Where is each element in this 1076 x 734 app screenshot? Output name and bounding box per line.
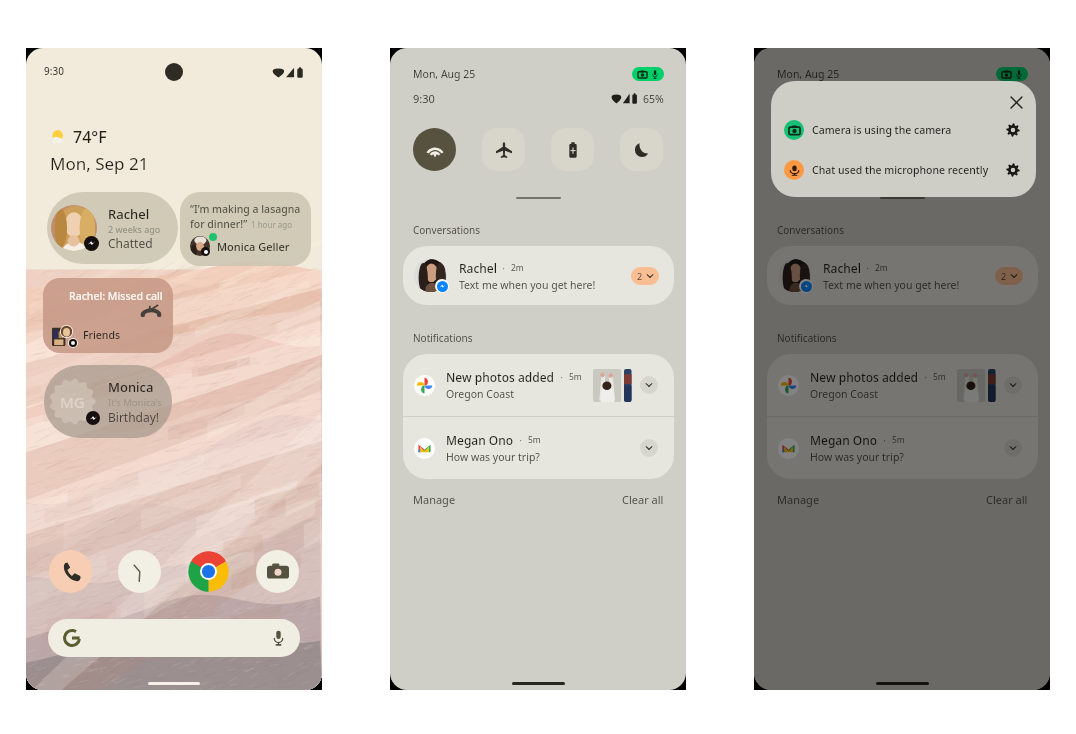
staticText: New photos added bbox=[810, 369, 919, 385]
staticText: Mon, Sep 21 bbox=[50, 152, 149, 175]
staticText: 2m bbox=[511, 262, 524, 274]
button[interactable]: Airplane mode bbox=[482, 128, 525, 171]
staticText: Monica bbox=[108, 378, 154, 396]
button[interactable]: Expand conversation bbox=[631, 267, 659, 285]
button[interactable]: Internet bbox=[777, 128, 820, 171]
staticText: Oregon Coast bbox=[446, 387, 514, 401]
staticText: Oregon Coast bbox=[810, 387, 878, 401]
button[interactable]: Rachel bbox=[767, 246, 1038, 305]
staticText: 5m bbox=[933, 371, 946, 383]
button[interactable]: Do not disturb bbox=[984, 128, 1027, 171]
button[interactable]: Rachel bbox=[403, 246, 674, 305]
staticText: 9:30 bbox=[413, 91, 435, 106]
staticText: · bbox=[919, 370, 933, 384]
staticText: Monica Geller bbox=[217, 239, 290, 254]
staticText: Conversations bbox=[777, 223, 845, 237]
staticText: 5m bbox=[569, 371, 582, 383]
staticText: 2m bbox=[875, 262, 888, 274]
button[interactable]: Privacy indicators bbox=[996, 67, 1028, 81]
staticText: · bbox=[861, 261, 875, 275]
staticText: New photos added bbox=[446, 369, 555, 385]
staticText: How was your trip? bbox=[446, 450, 540, 464]
staticText: It’s Monica’s bbox=[108, 396, 162, 409]
staticText: 65% bbox=[643, 92, 664, 106]
button[interactable]: Chat used the microphone recently bbox=[771, 158, 1036, 182]
button[interactable]: Battery saver bbox=[551, 128, 594, 171]
button[interactable]: Do not disturb bbox=[620, 128, 663, 171]
staticText: Notifications bbox=[777, 331, 837, 345]
staticText: Rachel: Missed call bbox=[69, 289, 163, 303]
button[interactable]: Privacy indicators bbox=[632, 67, 664, 81]
button[interactable]: Phone bbox=[49, 550, 92, 593]
button[interactable]: MG bbox=[44, 365, 172, 438]
button[interactable]: Clock bbox=[118, 550, 161, 593]
staticText: Rachel bbox=[823, 260, 861, 276]
button[interactable]: Battery saver bbox=[915, 128, 958, 171]
staticText: 5m bbox=[892, 434, 905, 446]
staticText: Chatted bbox=[108, 235, 153, 251]
staticText: “I’m making a lasagna bbox=[190, 202, 301, 216]
staticText: Megan Ono bbox=[446, 432, 514, 448]
staticText: 2 bbox=[1001, 270, 1007, 282]
button[interactable]: Chrome bbox=[187, 550, 230, 593]
button[interactable]: Internet bbox=[413, 128, 456, 171]
staticText: How was your trip? bbox=[810, 450, 904, 464]
button[interactable]: New photos added bbox=[403, 354, 674, 416]
button[interactable]: Megan Ono bbox=[403, 417, 674, 479]
button[interactable]: Expand bbox=[1004, 376, 1022, 394]
staticText: Rachel bbox=[108, 205, 150, 223]
staticText: Chat used the microphone recently bbox=[812, 163, 989, 177]
button[interactable]: Clear all bbox=[986, 492, 1028, 507]
staticText: Notifications bbox=[413, 331, 473, 345]
button[interactable]: Clear all bbox=[622, 492, 664, 507]
staticText: 2 weeks ago bbox=[108, 223, 161, 235]
button[interactable]: Expand bbox=[640, 439, 658, 457]
staticText: Friends bbox=[83, 328, 121, 342]
button[interactable]: Rachel bbox=[47, 192, 178, 264]
button[interactable]: Manage bbox=[413, 492, 456, 507]
button[interactable]: Expand bbox=[1004, 439, 1022, 457]
staticText: MG bbox=[60, 392, 85, 412]
staticText: Conversations bbox=[413, 223, 481, 237]
staticText: · bbox=[555, 370, 569, 384]
staticText: · bbox=[497, 261, 511, 275]
staticText: 2 bbox=[637, 270, 643, 282]
staticText: Mon, Aug 25 bbox=[413, 67, 476, 81]
button[interactable]: Megan Ono bbox=[767, 417, 1038, 479]
staticText: 9:30 bbox=[44, 64, 64, 78]
staticText: 74°F bbox=[73, 126, 107, 148]
button[interactable]: New photos added bbox=[767, 354, 1038, 416]
staticText: Birthday! bbox=[108, 409, 160, 425]
button[interactable]: Expand conversation bbox=[995, 267, 1023, 285]
staticText: 1 hour ago bbox=[251, 219, 293, 230]
button[interactable]: Airplane mode bbox=[846, 128, 889, 171]
staticText: Mon, Aug 25 bbox=[777, 67, 840, 81]
staticText: 5m bbox=[528, 434, 541, 446]
staticText: · bbox=[514, 433, 528, 447]
button[interactable]: Rachel: Missed call bbox=[43, 278, 173, 353]
staticText: · bbox=[878, 433, 892, 447]
button[interactable]: Expand bbox=[640, 376, 658, 394]
button[interactable]: Close bbox=[1003, 89, 1029, 115]
staticText: Text me when you get here! bbox=[823, 278, 960, 292]
button[interactable]: Camera bbox=[256, 550, 299, 593]
staticText: 65% bbox=[1007, 92, 1028, 106]
button[interactable]: “I’m making a lasagna bbox=[180, 192, 311, 266]
button[interactable]: Settings bbox=[1001, 118, 1025, 142]
button[interactable]: Manage bbox=[777, 492, 820, 507]
staticText: for dinner!” bbox=[190, 217, 248, 231]
button[interactable]: Search bbox=[48, 619, 300, 657]
button[interactable]: Camera is using the camera bbox=[771, 118, 1036, 142]
staticText: Megan Ono bbox=[810, 432, 878, 448]
staticText: Text me when you get here! bbox=[459, 278, 596, 292]
staticText: Camera is using the camera bbox=[812, 123, 952, 137]
staticText: Rachel bbox=[459, 260, 497, 276]
button[interactable]: Settings bbox=[1001, 158, 1025, 182]
